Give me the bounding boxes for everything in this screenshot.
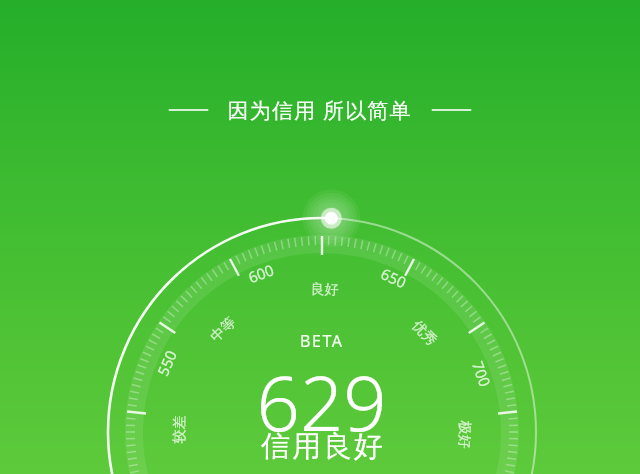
button[interactable]: 芝麻信用分 629 信用良好 xyxy=(0,0,640,474)
